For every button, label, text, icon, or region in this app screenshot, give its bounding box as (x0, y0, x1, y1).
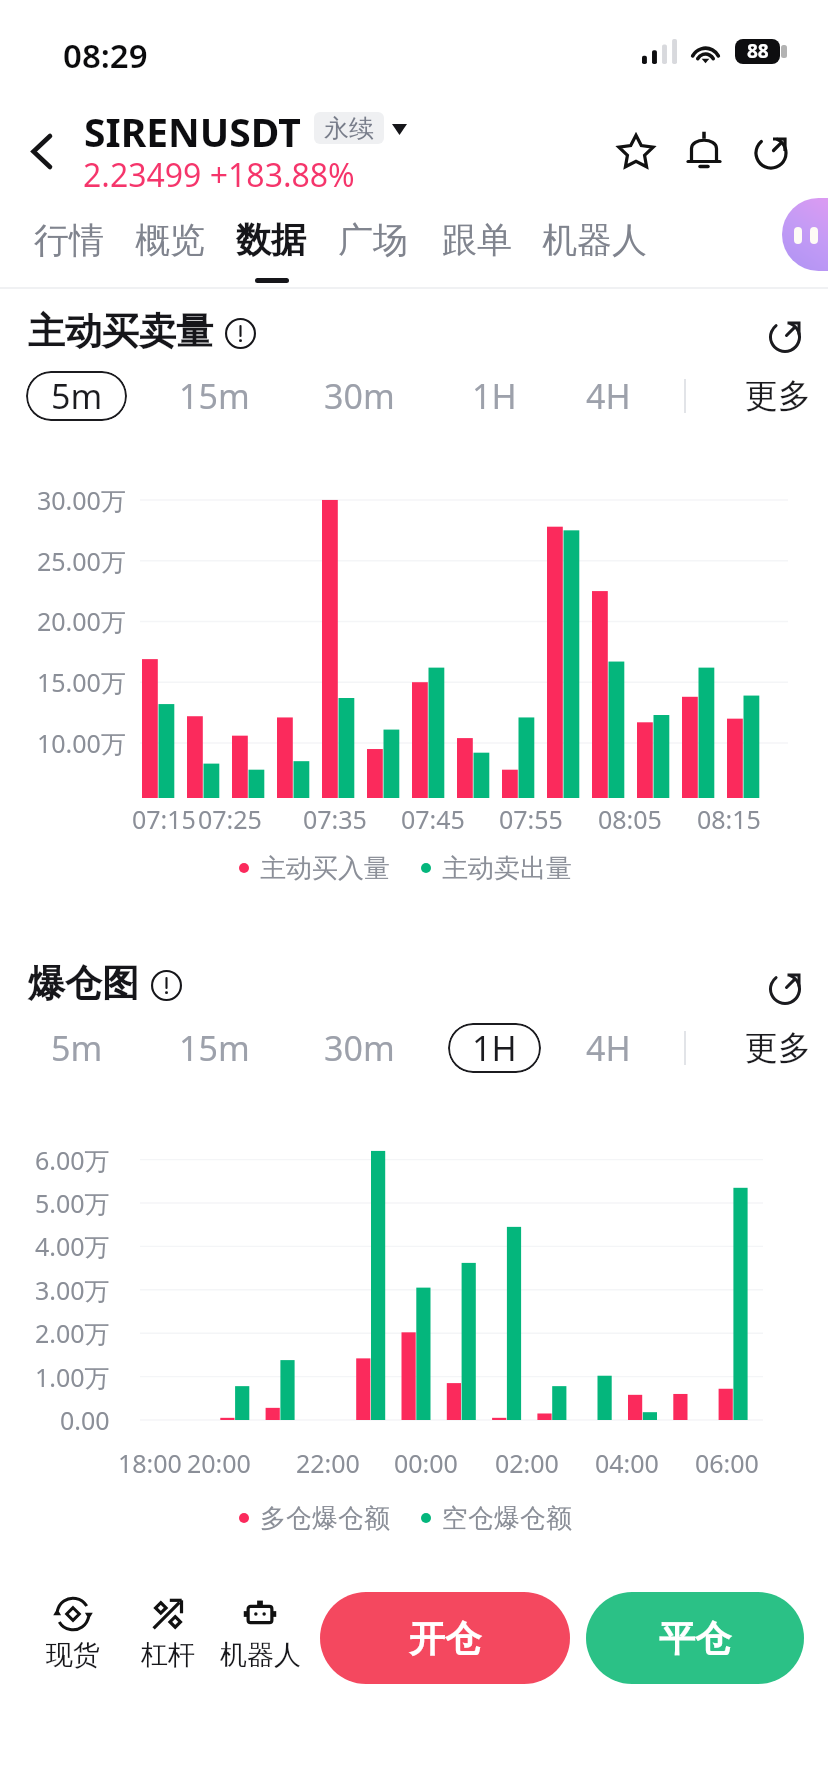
button[interactable]: 概览 (124, 212, 216, 268)
staticText: 15.00万 (37, 665, 126, 699)
button[interactable]: 4H (558, 371, 659, 421)
staticText: 07:35 (303, 802, 367, 836)
button[interactable]: 数据 (225, 212, 317, 268)
staticText: 更多 (745, 375, 811, 417)
button[interactable]: 平仓 (586, 1592, 804, 1684)
staticText: 15m (179, 373, 250, 419)
staticText: 广场 (338, 218, 408, 262)
staticText: 30m (324, 373, 395, 419)
staticText: 20.00万 (37, 604, 126, 638)
button[interactable]: 开仓 (320, 1592, 570, 1684)
staticText: 数据 (236, 218, 306, 262)
button[interactable]: 5m (26, 1023, 127, 1073)
staticText: 07:15 (132, 802, 196, 836)
button[interactable]: 15m (164, 1023, 265, 1073)
staticText: 6.00万 (35, 1143, 110, 1177)
button[interactable]: Share (741, 119, 805, 183)
button[interactable]: 现货 (39, 1596, 107, 1672)
staticText: 5m (51, 373, 103, 419)
button[interactable]: Assistant (782, 198, 828, 271)
staticText: 主动买卖量 (28, 308, 213, 355)
button[interactable]: 1H (444, 371, 545, 421)
staticText: 机器人 (220, 1638, 301, 1672)
button[interactable]: 机器人 (214, 1596, 306, 1672)
staticText: 02:00 (495, 1446, 559, 1480)
staticText: 杠杆 (141, 1638, 195, 1672)
staticText: 4H (586, 1025, 631, 1071)
staticText: 平仓 (659, 1616, 731, 1661)
staticText: 永续 (324, 113, 374, 144)
staticText: 2.00万 (35, 1316, 110, 1350)
staticText: 20:00 (187, 1446, 251, 1480)
staticText: 5m (51, 1025, 103, 1071)
button[interactable]: 4H (558, 1023, 659, 1073)
button[interactable]: 更多 (745, 1023, 827, 1073)
button[interactable]: 行情 (23, 212, 115, 268)
staticText: 多仓爆仓额 (260, 1502, 390, 1534)
button[interactable]: Favorite (604, 119, 668, 183)
staticText: 爆仓图 (28, 960, 139, 1007)
staticText: 1H (472, 373, 517, 419)
button[interactable]: Open full chart (757, 305, 817, 365)
staticText: 4.00万 (35, 1229, 110, 1263)
staticText: 07:45 (401, 802, 465, 836)
staticText: 机器人 (542, 218, 647, 262)
staticText: 22:00 (296, 1446, 360, 1480)
staticText: 1.00万 (35, 1360, 110, 1394)
staticText: 5.00万 (35, 1186, 110, 1220)
staticText: SIRENUSDT (84, 105, 301, 158)
button[interactable]: 跟单 (431, 212, 523, 268)
button[interactable]: 5m (26, 371, 127, 421)
staticText: 08:29 (63, 33, 148, 78)
staticText: 88 (747, 38, 769, 63)
staticText: 07:25 (198, 802, 262, 836)
staticText: 06:00 (695, 1446, 759, 1480)
staticText: 现货 (46, 1638, 100, 1672)
button[interactable]: Open full chart (757, 957, 817, 1017)
staticText: 25.00万 (37, 544, 126, 578)
button[interactable]: Back (14, 119, 78, 183)
button[interactable]: 15m (164, 371, 265, 421)
staticText: 更多 (745, 1027, 811, 1069)
button[interactable]: 机器人 (531, 212, 658, 268)
button[interactable]: 更多 (745, 371, 827, 421)
button[interactable]: 杠杆 (134, 1596, 202, 1672)
staticText: 10.00万 (37, 726, 126, 760)
staticText: 08:15 (697, 802, 761, 836)
button[interactable]: 广场 (327, 212, 419, 268)
staticText: 行情 (34, 218, 104, 262)
button[interactable]: 1H (448, 1023, 541, 1073)
staticText: 概览 (135, 218, 205, 262)
staticText: 07:55 (499, 802, 563, 836)
staticText: 1H (472, 1025, 517, 1071)
button[interactable]: Alerts (672, 119, 736, 183)
staticText: 3.00万 (35, 1273, 110, 1307)
staticText: 00:00 (394, 1446, 458, 1480)
staticText: 开仓 (409, 1616, 481, 1661)
staticText: 主动卖出量 (442, 852, 572, 884)
staticText: 04:00 (595, 1446, 659, 1480)
staticText: 主动买入量 (260, 852, 390, 884)
staticText: 08:05 (598, 802, 662, 836)
staticText: 2.23499 +183.88% (83, 153, 355, 197)
button[interactable]: 30m (309, 371, 410, 421)
staticText: 0.00 (60, 1403, 110, 1437)
staticText: 18:00 (118, 1446, 182, 1480)
staticText: 空仓爆仓额 (442, 1502, 572, 1534)
staticText: 15m (179, 1025, 250, 1071)
staticText: 跟单 (442, 218, 512, 262)
button[interactable]: 30m (309, 1023, 410, 1073)
staticText: 30m (324, 1025, 395, 1071)
staticText: 4H (586, 373, 631, 419)
staticText: 30.00万 (37, 483, 126, 517)
